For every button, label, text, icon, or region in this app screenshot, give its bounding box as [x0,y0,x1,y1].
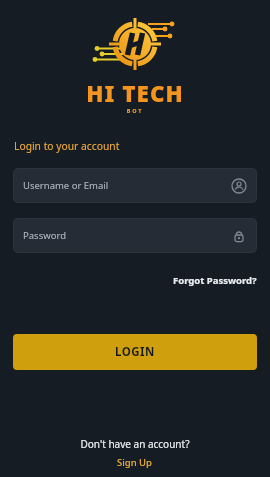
staticText: Login to your account [14,139,120,153]
staticText: Don't have an account? [0,437,270,451]
button[interactable]: Username or Email [13,168,257,203]
staticText: LOGIN [115,344,155,360]
button[interactable]: Forgot Password? [173,274,257,287]
staticText: BOT [0,107,270,114]
staticText: HI TECH [0,78,270,109]
button[interactable]: LOGIN [13,334,257,370]
button[interactable]: Sign Up [117,456,153,469]
staticText: Password [23,229,66,242]
staticText: Username or Email [23,179,109,192]
button[interactable]: Password [13,218,257,253]
